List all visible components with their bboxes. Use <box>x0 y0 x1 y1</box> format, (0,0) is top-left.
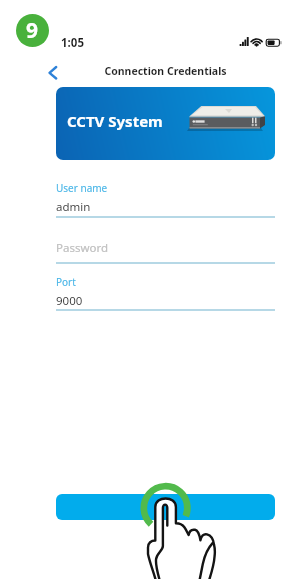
button[interactable]: Port <box>56 275 275 305</box>
staticText: admin <box>56 199 91 215</box>
button[interactable]: User name <box>56 181 275 211</box>
button[interactable]: Submit <box>56 494 275 520</box>
staticText: CCTV System <box>67 111 163 131</box>
staticText: Port <box>56 275 76 289</box>
staticText: Connection Credentials <box>56 64 275 78</box>
staticText: Password <box>56 240 109 256</box>
staticText: User name <box>56 181 108 195</box>
staticText: 9000 <box>56 293 83 309</box>
button[interactable]: Back <box>45 62 63 82</box>
button[interactable]: CCTV System <box>56 87 275 160</box>
staticText: 9 <box>26 16 39 45</box>
staticText: 1:05 <box>61 35 84 51</box>
